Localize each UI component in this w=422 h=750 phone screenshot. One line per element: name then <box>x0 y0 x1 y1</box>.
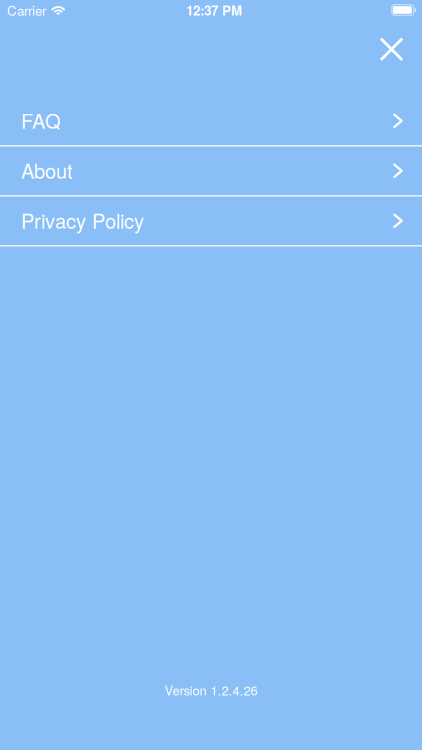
button[interactable]: About <box>0 146 422 196</box>
staticText: Privacy Policy <box>21 206 144 234</box>
button[interactable]: Close <box>369 27 413 71</box>
staticText: About <box>21 156 73 184</box>
staticText: Carrier <box>7 0 46 20</box>
staticText: Version 1.2.4.26 <box>164 681 257 699</box>
button[interactable]: Privacy Policy <box>0 196 422 246</box>
staticText: 12:37 PM <box>186 0 242 20</box>
button[interactable]: FAQ <box>0 96 422 146</box>
staticText: FAQ <box>21 106 61 134</box>
